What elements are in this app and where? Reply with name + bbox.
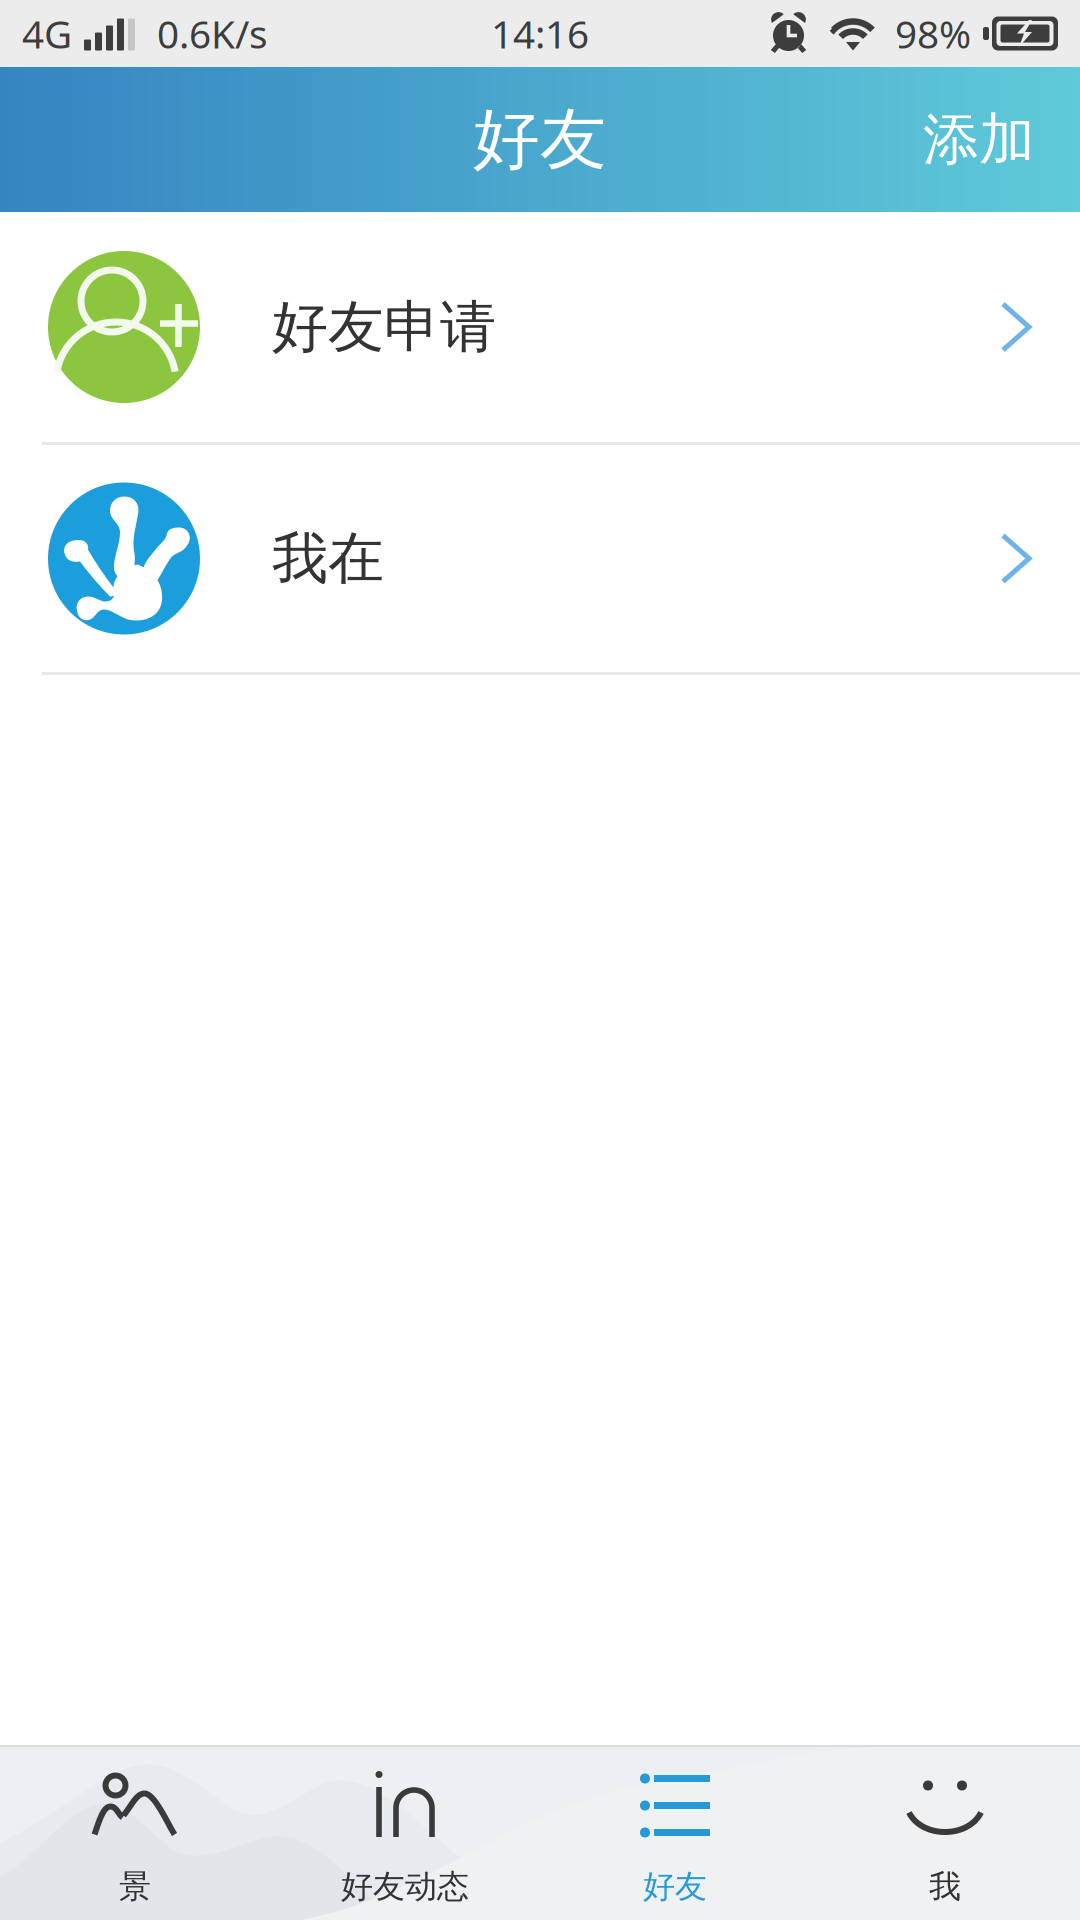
staticText: 14:16 (491, 8, 589, 59)
button[interactable]: 添加 (899, 83, 1059, 196)
staticText: 我在 (272, 524, 384, 593)
staticText: 98% (895, 8, 971, 59)
staticText: 添加 (923, 105, 1035, 174)
button[interactable]: 我在 (0, 445, 1080, 675)
staticText: 景 (119, 1867, 151, 1906)
button[interactable]: 好友申请 (0, 212, 1080, 445)
staticText: 4G (22, 8, 72, 59)
staticText: 好友 (643, 1867, 707, 1906)
staticText: 好友 (473, 99, 607, 180)
staticText: 我 (929, 1867, 961, 1906)
button[interactable]: 好友动态 (270, 1747, 540, 1920)
button[interactable]: 景 (0, 1747, 270, 1920)
staticText: 好友申请 (272, 293, 496, 361)
button[interactable]: 我 (810, 1747, 1080, 1920)
staticText: 0.6K/s (157, 8, 268, 59)
button[interactable]: 好友 (540, 1747, 810, 1920)
staticText: 好友动态 (341, 1867, 469, 1906)
